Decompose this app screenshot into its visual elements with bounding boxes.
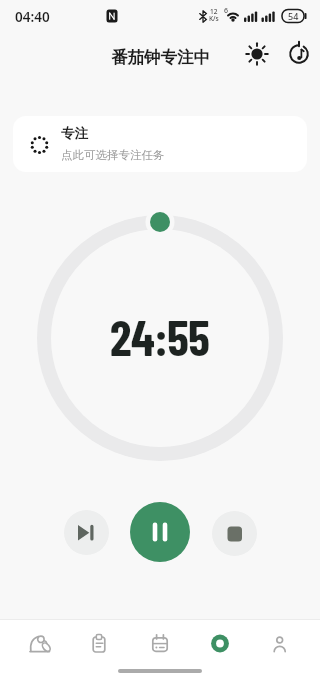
- staticText: 6: [224, 6, 229, 16]
- staticText: 番茄钟专注中: [111, 47, 210, 68]
- button[interactable]: [283, 38, 315, 70]
- button[interactable]: [250, 620, 310, 668]
- staticText: 24:55: [110, 307, 210, 366]
- button[interactable]: [241, 38, 273, 70]
- button[interactable]: [9, 620, 69, 668]
- button[interactable]: [64, 510, 109, 555]
- button[interactable]: [130, 620, 190, 668]
- staticText: 专注: [61, 125, 88, 142]
- staticText: 点此可选择专注任务: [61, 148, 165, 162]
- button[interactable]: [190, 620, 250, 668]
- staticText: 04:40: [15, 8, 50, 26]
- staticText: 54: [288, 10, 299, 22]
- button[interactable]: [130, 502, 190, 562]
- button[interactable]: [69, 620, 129, 668]
- button[interactable]: 专注: [13, 116, 307, 172]
- button[interactable]: [212, 511, 257, 556]
- staticText: K/s: [209, 14, 219, 23]
- staticText: 12: [210, 7, 218, 16]
